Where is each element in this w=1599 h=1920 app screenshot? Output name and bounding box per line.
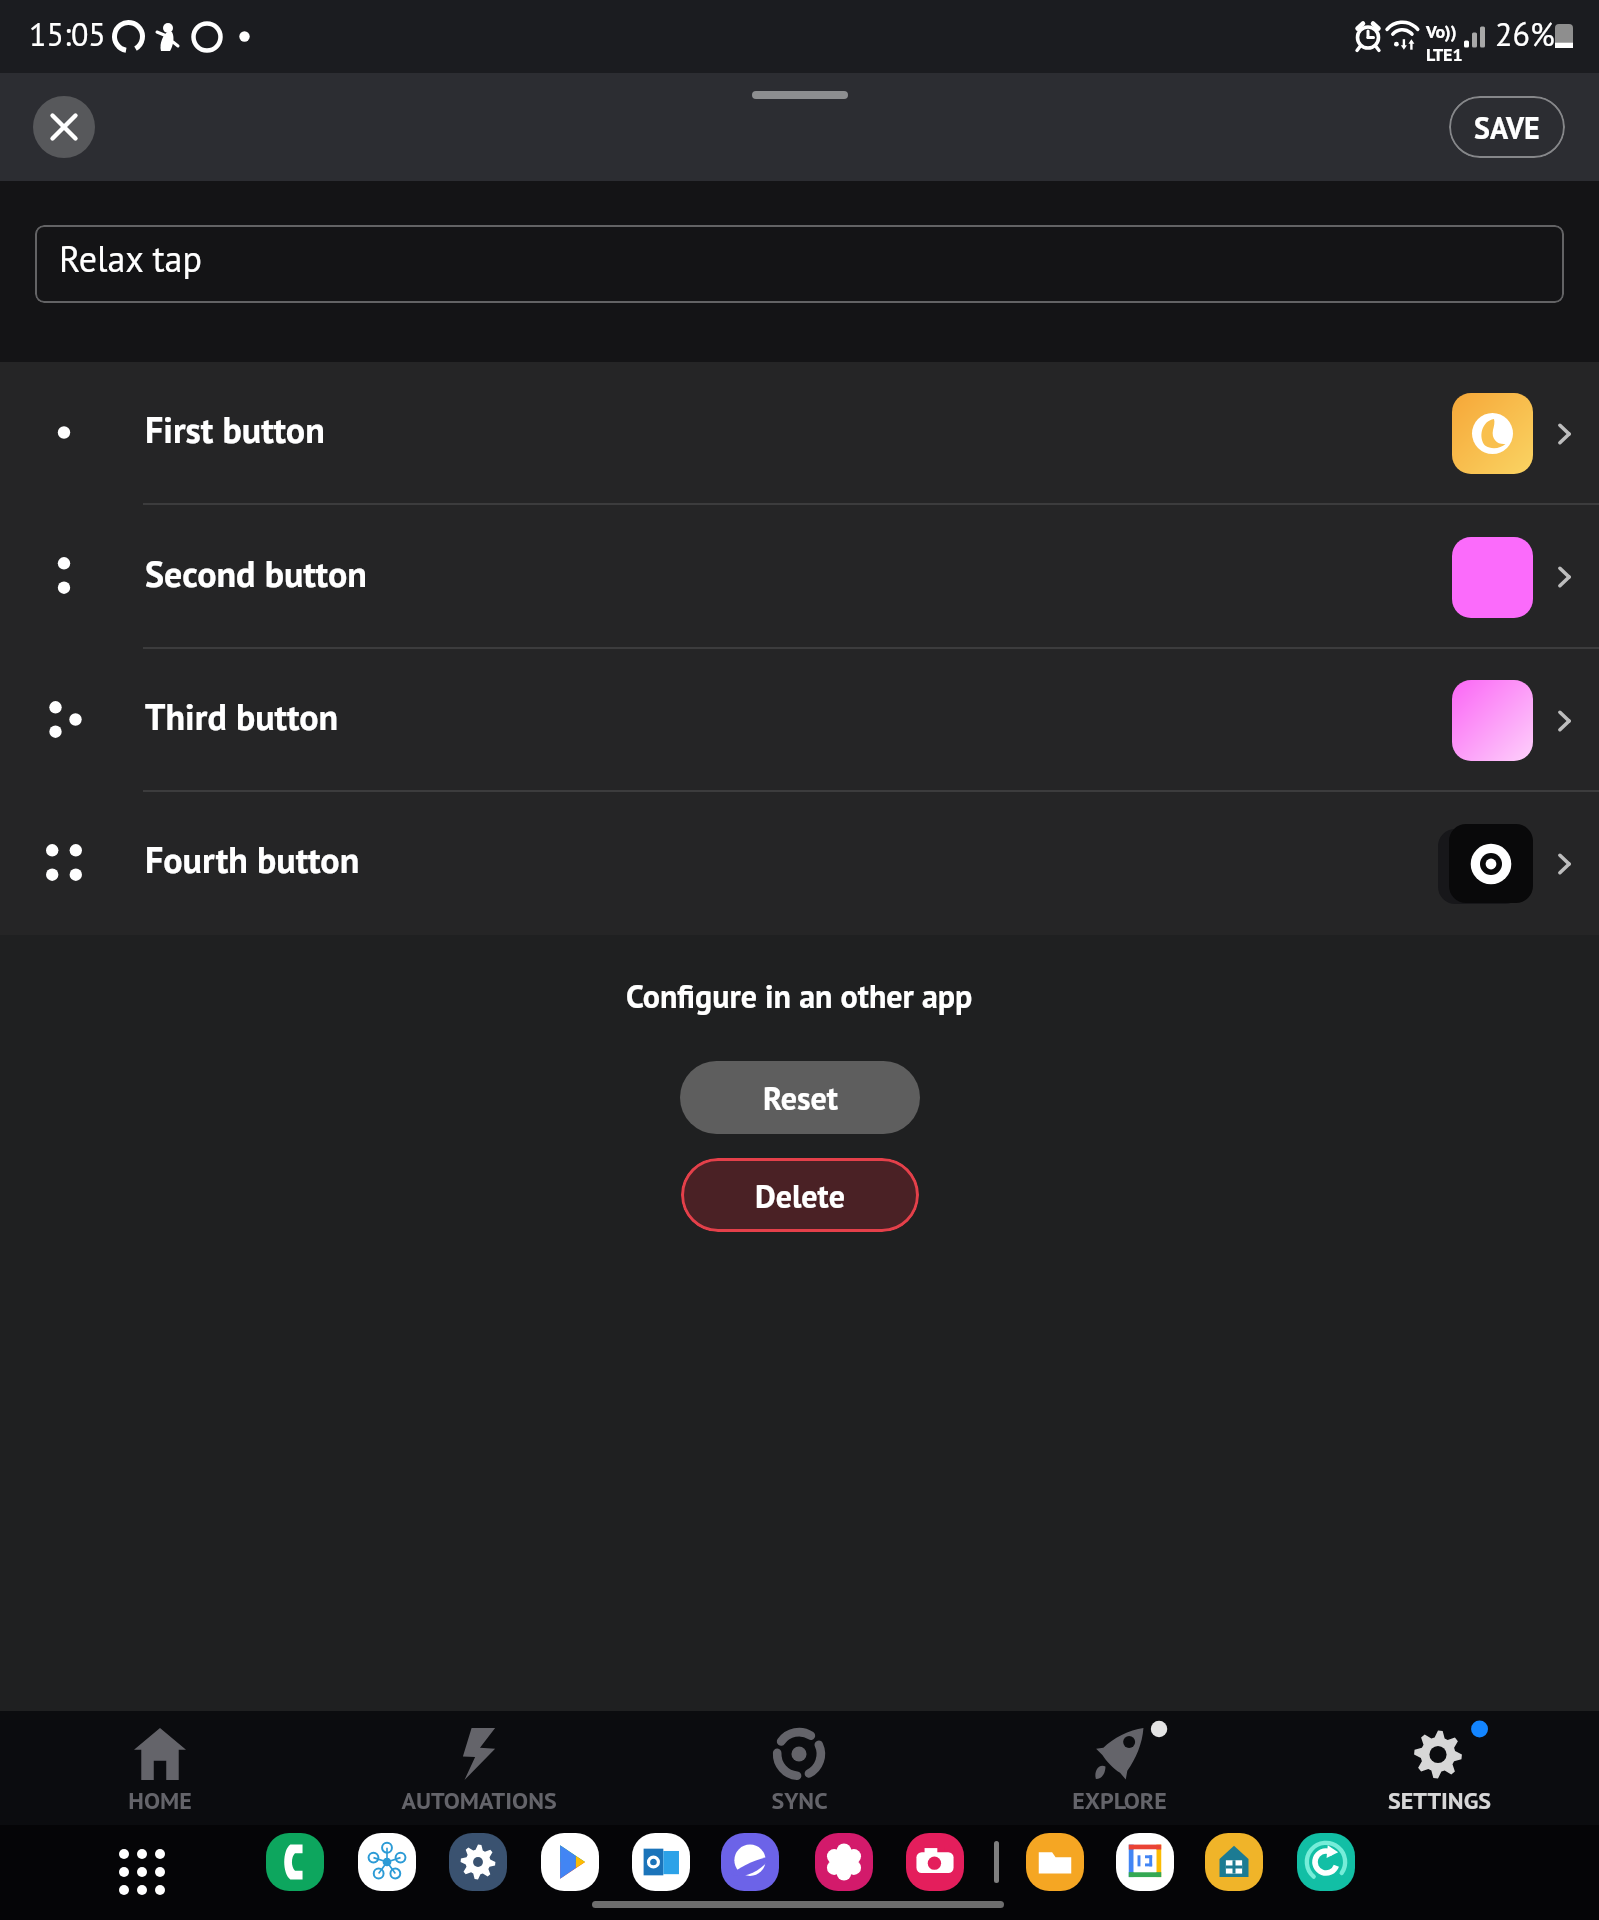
button[interactable]: Fourth button [0,792,1599,935]
button[interactable]: All apps [119,1849,165,1895]
staticText: SETTINGS [1388,1785,1491,1816]
button[interactable]: Settings [449,1833,507,1891]
staticText: Second button [145,550,367,597]
staticText: Configure in an other app [626,975,973,1016]
button[interactable]: Play Store [541,1833,599,1891]
staticText: AUTOMATIONS [401,1785,557,1816]
staticText: 15:05 [29,13,106,54]
button[interactable]: Camera [906,1833,964,1891]
button[interactable]: HOME [0,1711,319,1825]
staticText: Delete [755,1175,845,1216]
button[interactable]: Gallery [815,1833,873,1891]
button[interactable]: EXPLORE [959,1711,1279,1825]
button[interactable]: SAVE [1449,96,1565,158]
button[interactable]: My Files [1026,1833,1084,1891]
staticText: Vo)) [1426,20,1457,43]
button[interactable]: SETTINGS [1279,1711,1599,1825]
button[interactable]: Close [33,96,95,158]
staticText: Fourth button [145,836,360,883]
staticText: SYNC [771,1785,828,1816]
button[interactable]: Outlook [632,1833,690,1891]
button[interactable]: First button [0,362,1599,505]
button[interactable]: Internet [721,1833,779,1891]
staticText: 26% [1495,13,1555,54]
staticText: LTE1 [1426,43,1463,66]
button[interactable]: Second button [0,505,1599,649]
button[interactable]: Reset [680,1061,920,1134]
staticText: SAVE [1474,108,1540,147]
staticText: HOME [128,1785,192,1816]
button[interactable]: SmartThings [358,1833,416,1891]
staticText: Third button [145,693,339,740]
staticText: EXPLORE [1072,1785,1167,1816]
button[interactable]: Calendar [1116,1833,1174,1891]
staticText: First button [145,406,325,453]
button[interactable]: Smart Switch [1297,1833,1355,1891]
button[interactable]: AUTOMATIONS [319,1711,639,1825]
button[interactable]: Phone [266,1833,324,1891]
staticText: Reset [763,1077,838,1118]
staticText: Relax tap [59,235,202,282]
button[interactable]: SYNC [639,1711,959,1825]
button[interactable]: Somfy [1205,1833,1263,1891]
button[interactable]: Delete [681,1158,919,1232]
button[interactable]: Third button [0,649,1599,792]
button[interactable]: Relax tap [35,225,1564,303]
